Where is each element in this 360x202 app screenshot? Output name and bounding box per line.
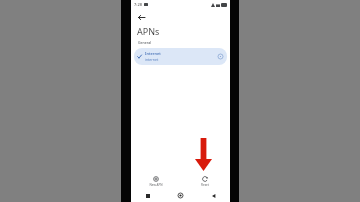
button[interactable]: Home bbox=[164, 189, 197, 202]
button[interactable]: Back bbox=[135, 11, 147, 23]
staticText: internet bbox=[145, 57, 159, 62]
staticText: New APN bbox=[149, 183, 163, 187]
staticText: 7:28 bbox=[134, 2, 142, 7]
button[interactable]: Reset bbox=[180, 173, 230, 189]
button[interactable]: Internet bbox=[134, 48, 227, 65]
staticText: Reset bbox=[201, 183, 209, 187]
staticText: Internet bbox=[145, 51, 161, 56]
staticText: APNs bbox=[137, 25, 160, 37]
staticText: General bbox=[138, 40, 152, 45]
button[interactable]: New APN bbox=[131, 173, 180, 189]
button[interactable]: Back bbox=[197, 189, 230, 202]
button[interactable]: APN details bbox=[217, 53, 224, 60]
button[interactable]: Recents bbox=[131, 189, 164, 202]
